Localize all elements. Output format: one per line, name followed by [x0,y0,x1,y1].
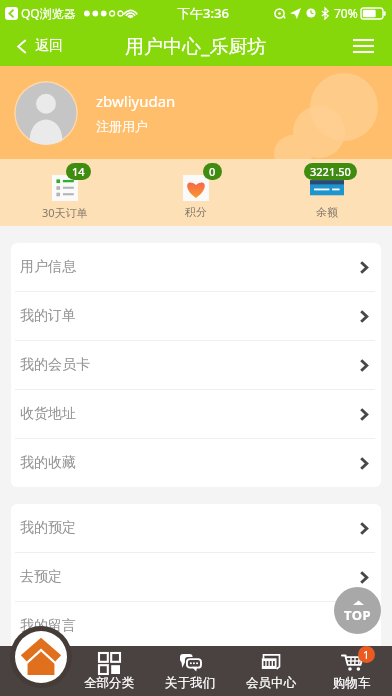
staticText: 返回 [35,37,63,55]
staticText: 我的收藏 [20,454,76,472]
staticText: zbwliyudan [96,91,176,111]
button[interactable]: 用户信息 [11,243,381,291]
staticText: 下午3:36 [177,4,229,22]
button[interactable]: 去预定 [11,553,381,601]
button[interactable]: Menu [347,33,380,59]
button[interactable]: 我的会员卡 [11,341,381,389]
button[interactable]: 0 [130,159,261,226]
button[interactable]: 我的预定 [11,504,381,552]
button[interactable]: 14 [0,159,130,226]
staticText: 3221.50 [310,164,351,179]
button[interactable]: Home [10,626,72,688]
staticText: QQ浏览器 [21,5,76,21]
staticText: 积分 [185,205,207,219]
staticText: 全部分类 [84,675,134,691]
staticText: 我的预定 [20,519,76,537]
staticText: 会员中心 [246,675,296,691]
button[interactable]: 全部分类 [68,646,149,696]
staticText: 1 [363,647,370,662]
staticText: 收货地址 [20,405,76,423]
staticText: 用户信息 [20,258,76,276]
button[interactable]: 收货地址 [11,390,381,438]
staticText: 70% [334,5,358,21]
button[interactable]: 返回 [12,31,68,61]
button[interactable]: 会员中心 [230,646,311,696]
staticText: 注册用户 [96,118,148,134]
staticText: 去预定 [20,568,62,586]
button[interactable]: 我的留言 [11,602,381,650]
button[interactable]: 关于我们 [149,646,230,696]
staticText: 我的会员卡 [20,356,90,374]
staticText: 用户中心_乐厨坊 [125,33,267,59]
button[interactable]: Back to top [334,587,381,634]
button[interactable]: 我的收藏 [11,439,381,487]
staticText: 0 [209,164,216,179]
staticText: 关于我们 [165,675,215,691]
button[interactable]: 我的订单 [11,292,381,340]
staticText: 我的留言 [20,617,76,635]
button[interactable]: 1 [311,646,392,696]
staticText: 余额 [316,205,338,219]
staticText: 购物车 [333,675,371,691]
staticText: 我的订单 [20,307,76,325]
staticText: 30天订单 [42,205,88,220]
staticText: 14 [72,164,85,179]
button[interactable]: 3221.50 [261,159,392,226]
staticText: TOP [344,606,372,624]
